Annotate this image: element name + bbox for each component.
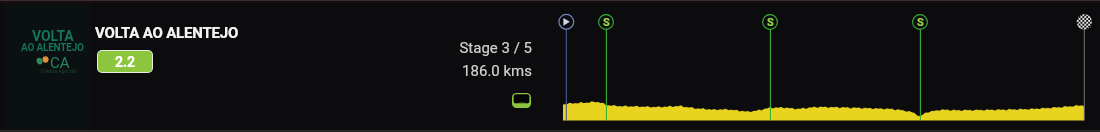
staticText: VOLTA AO ALENTEJO (95, 24, 239, 42)
staticText: S (917, 16, 924, 29)
button[interactable]: 2.2 (98, 51, 152, 72)
staticText: 186.0 kms (400, 62, 532, 132)
staticText: AO ALENTEJO (21, 42, 84, 54)
button[interactable]: Sprint point (597, 13, 615, 31)
staticText: S (767, 16, 774, 29)
staticText: 2.2 (115, 54, 136, 70)
button[interactable]: Sprint point (911, 13, 929, 31)
staticText: VOLTA (32, 28, 74, 44)
staticText: S (603, 16, 610, 29)
button[interactable] (4, 3, 91, 129)
button[interactable]: Sprint point (761, 13, 779, 31)
button[interactable]: VOLTA AO ALENTEJO (95, 24, 239, 42)
staticText: Stage 3 / 5 (400, 39, 532, 132)
staticText: CA (50, 54, 70, 72)
button[interactable]: Flat stage profile (512, 93, 531, 108)
staticText: Crédito Agrícola (41, 68, 77, 74)
